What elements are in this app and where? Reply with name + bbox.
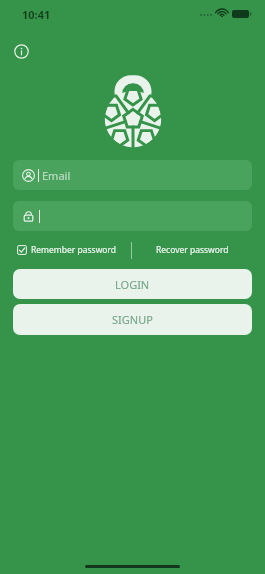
button[interactable] (13, 201, 252, 231)
staticText: LOGIN (115, 277, 150, 292)
staticText: 10:41 (22, 7, 51, 22)
staticText: Email (42, 168, 71, 183)
button[interactable]: SIGNUP (13, 304, 252, 335)
button[interactable]: Remember password (13, 242, 121, 258)
button[interactable]: Information (8, 38, 34, 64)
button[interactable]: Email (13, 160, 252, 190)
staticText: SIGNUP (112, 312, 153, 327)
staticText: Recover password (156, 244, 229, 256)
button[interactable]: LOGIN (13, 269, 252, 299)
button[interactable]: Recover password (133, 240, 252, 260)
staticText: Remember password (31, 244, 117, 256)
